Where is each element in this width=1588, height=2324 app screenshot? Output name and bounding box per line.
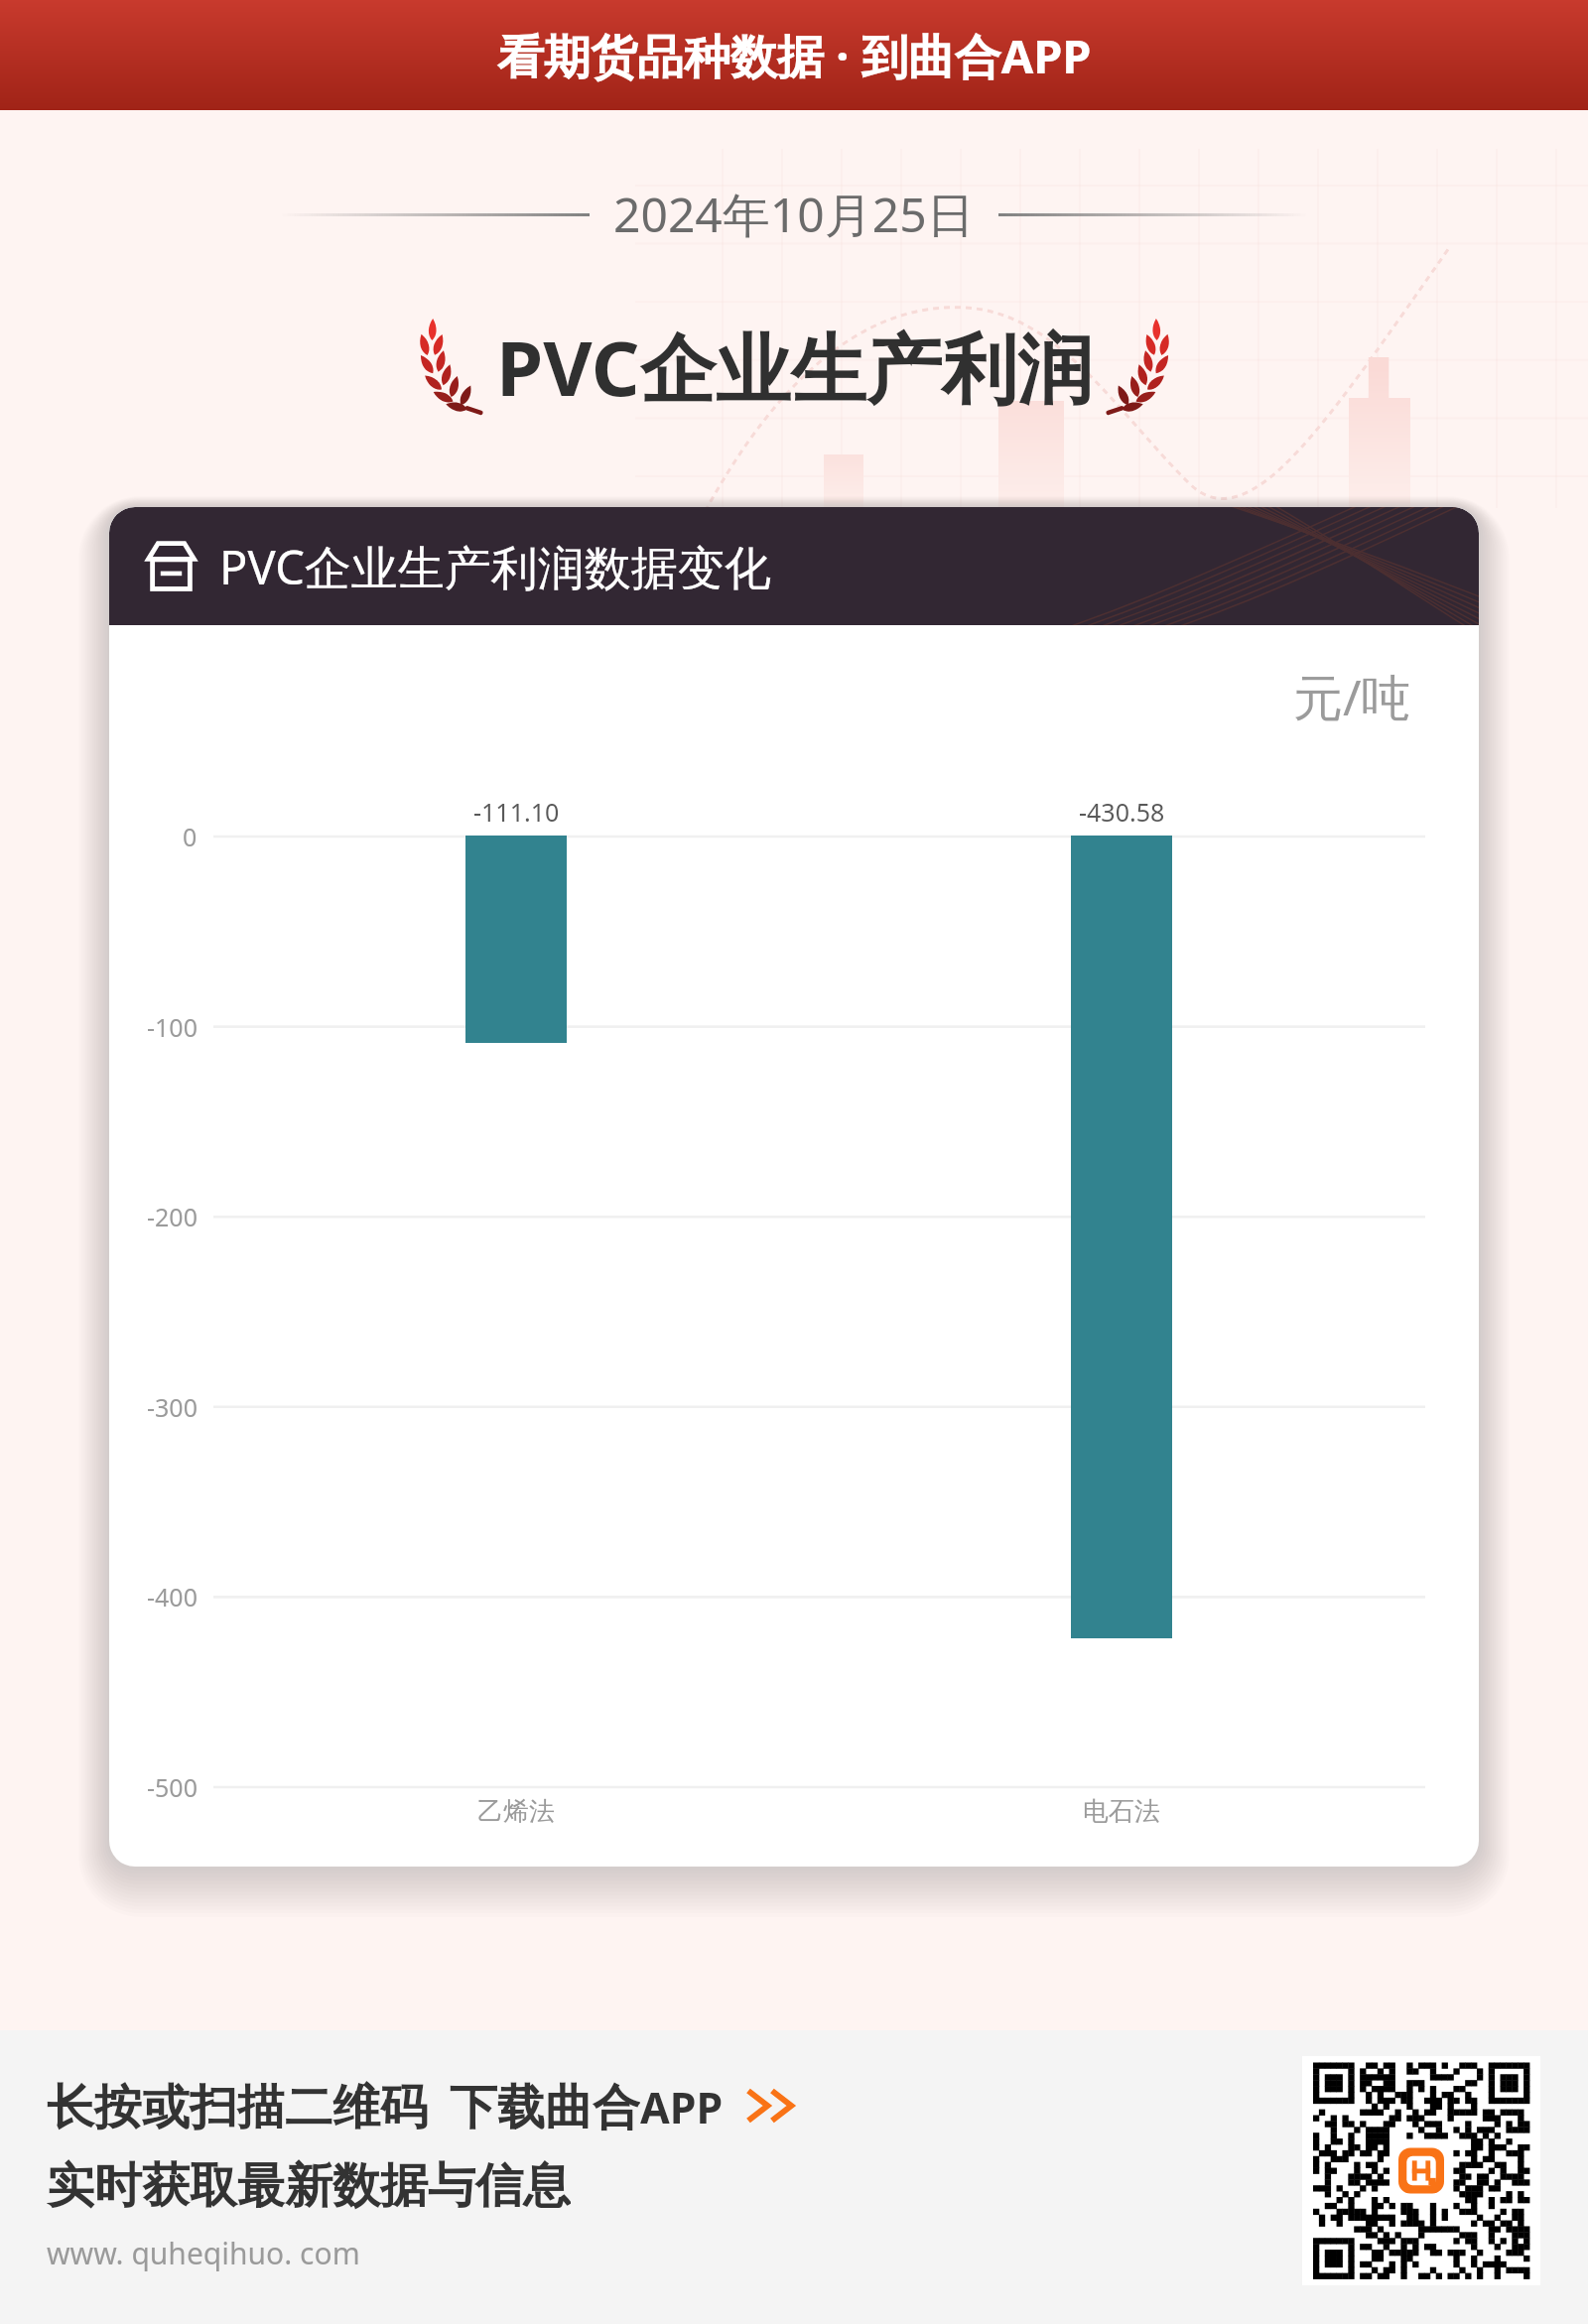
- button[interactable]: QR code: [1302, 2056, 1540, 2285]
- staticText: 长按或扫描二维码: [47, 2078, 428, 2133]
- staticText: -400: [147, 1580, 198, 1614]
- staticText: -100: [147, 1010, 198, 1044]
- staticText: 电石法: [1083, 1795, 1160, 1828]
- button[interactable]: PVC企业生产利润数据变化: [109, 507, 1479, 1867]
- staticText: -500: [147, 1770, 198, 1804]
- staticText: 0: [183, 820, 198, 853]
- staticText: -200: [147, 1200, 198, 1233]
- button[interactable]: 看期货品种数据 · 到曲合APP: [0, 0, 1588, 110]
- staticText: 元/吨: [1293, 663, 1411, 728]
- button[interactable]: 长按或扫描二维码: [47, 2078, 791, 2133]
- staticText: 下载曲合: [450, 2078, 640, 2133]
- staticText: APP: [640, 2078, 724, 2133]
- staticText: PVC企业生产利润: [496, 316, 1093, 419]
- staticText: www. quheqihuo. com: [47, 2233, 360, 2273]
- staticText: -430.58: [1079, 795, 1165, 829]
- staticText: PVC企业生产利润数据变化: [219, 535, 771, 598]
- staticText: 看期货品种数据 · 到曲合APP: [497, 24, 1092, 87]
- staticText: 乙烯法: [477, 1795, 555, 1828]
- staticText: 实时获取最新数据与信息: [47, 2156, 571, 2212]
- staticText: -111.10: [473, 795, 560, 829]
- staticText: -300: [147, 1390, 198, 1424]
- staticText: 2024年10月25日: [613, 182, 975, 247]
